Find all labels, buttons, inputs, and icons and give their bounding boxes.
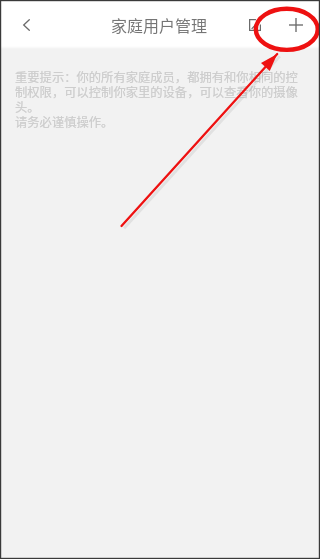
button[interactable]: Edit <box>237 2 272 48</box>
button[interactable]: Add <box>274 0 315 46</box>
staticText: 重要提示：你的所有家庭成员，都拥有和你相同的控制权限，可以控制你家里的设备，可以… <box>15 68 304 130</box>
button[interactable]: Back <box>6 0 46 46</box>
staticText: 家庭用户管理 <box>111 13 208 36</box>
